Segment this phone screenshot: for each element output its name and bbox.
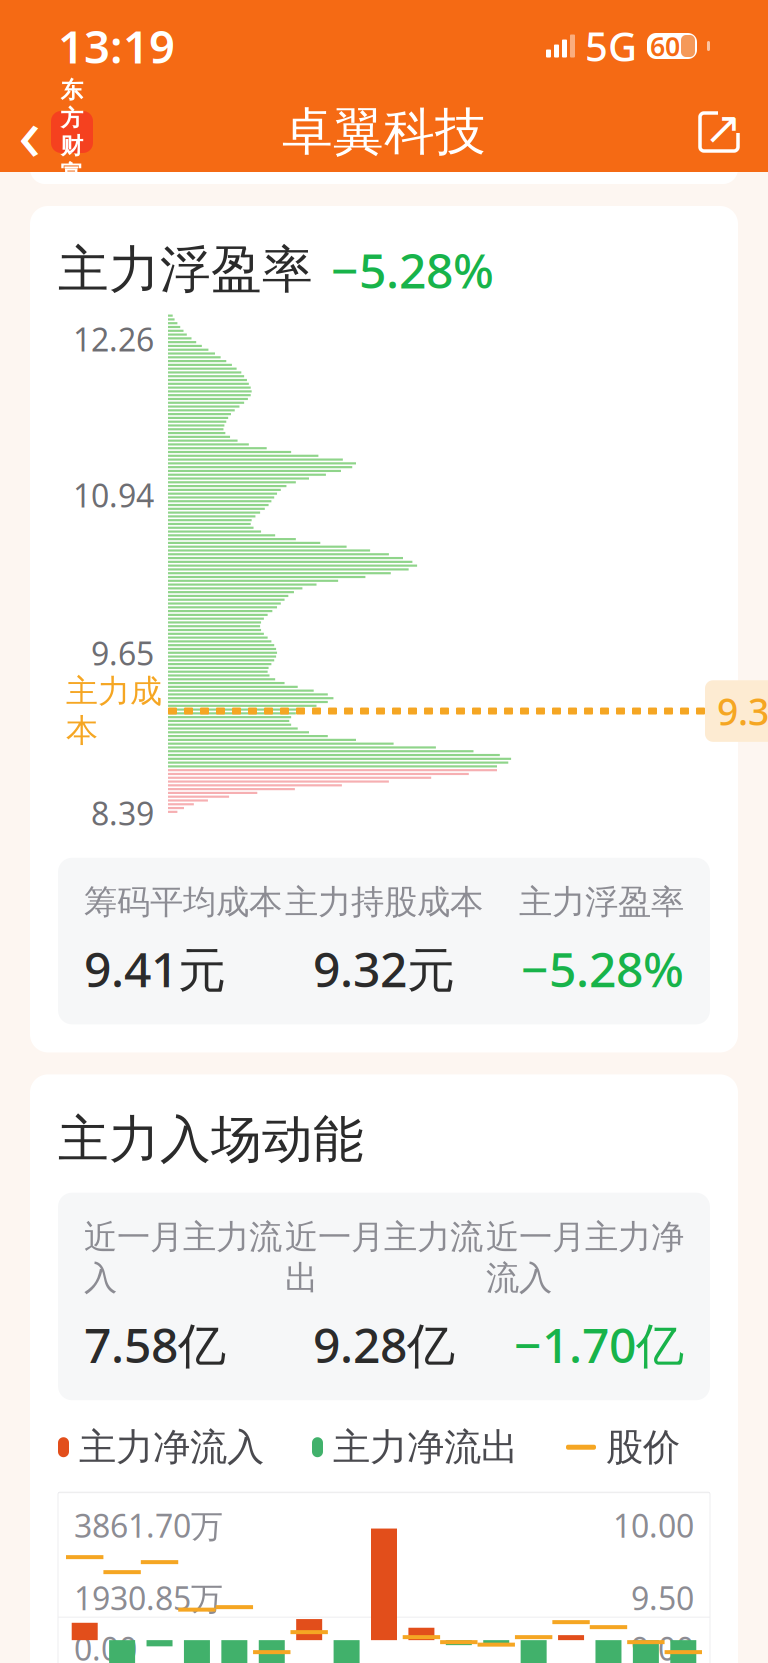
staticText: 9.50 (631, 1577, 694, 1619)
staticText: ↗ (704, 102, 742, 154)
button[interactable]: Back (0, 97, 111, 167)
staticText: 东方 (60, 76, 83, 132)
staticText: 主力净流入 (79, 1424, 264, 1470)
staticText: 筹码平均成本 (84, 882, 282, 923)
staticText: 股价 (606, 1424, 680, 1470)
staticText: 主力成本 (66, 672, 162, 750)
staticText: 9.41元 (84, 937, 226, 1000)
staticText: −5.28% (521, 937, 684, 1000)
staticText: 10.94 (73, 474, 154, 516)
staticText: 近一月主力流出 (285, 1217, 483, 1299)
staticText: 主力持股成本 (285, 882, 483, 923)
button[interactable]: Share (670, 97, 768, 167)
staticText: 卓翼科技 (282, 101, 486, 163)
staticText: 近一月主力流入 (84, 1217, 282, 1299)
staticText: 0.00 (74, 1627, 137, 1663)
staticText: 主力浮盈率 (58, 239, 313, 301)
staticText: 5G (585, 19, 637, 72)
staticText: 主力浮盈率 (519, 882, 684, 923)
staticText: 9.00 (631, 1627, 694, 1663)
staticText: 7.58亿 (84, 1312, 226, 1376)
staticText: 10.00 (613, 1504, 694, 1547)
staticText: −1.70亿 (514, 1312, 684, 1376)
staticText: −5.28% (331, 238, 494, 302)
staticText: 9.28亿 (313, 1312, 455, 1376)
staticText: 9.65 (91, 632, 154, 674)
staticText: 13:19 (58, 16, 175, 76)
staticText: 近一月主力净流入 (486, 1217, 684, 1299)
staticText: 60 (650, 28, 680, 64)
staticText: 12.26 (73, 318, 154, 360)
staticText: 主力净流出 (333, 1424, 518, 1470)
staticText: 财富 (60, 132, 83, 188)
staticText: 3861.70万 (74, 1504, 223, 1547)
staticText: 8.39 (91, 792, 154, 834)
staticText: 9.32元 (313, 937, 455, 1000)
staticText: ‹ (18, 82, 41, 182)
staticText: 主力入场动能 (58, 1108, 364, 1171)
staticText: 1930.85万 (74, 1577, 223, 1619)
staticText: 9.32 (717, 686, 768, 736)
